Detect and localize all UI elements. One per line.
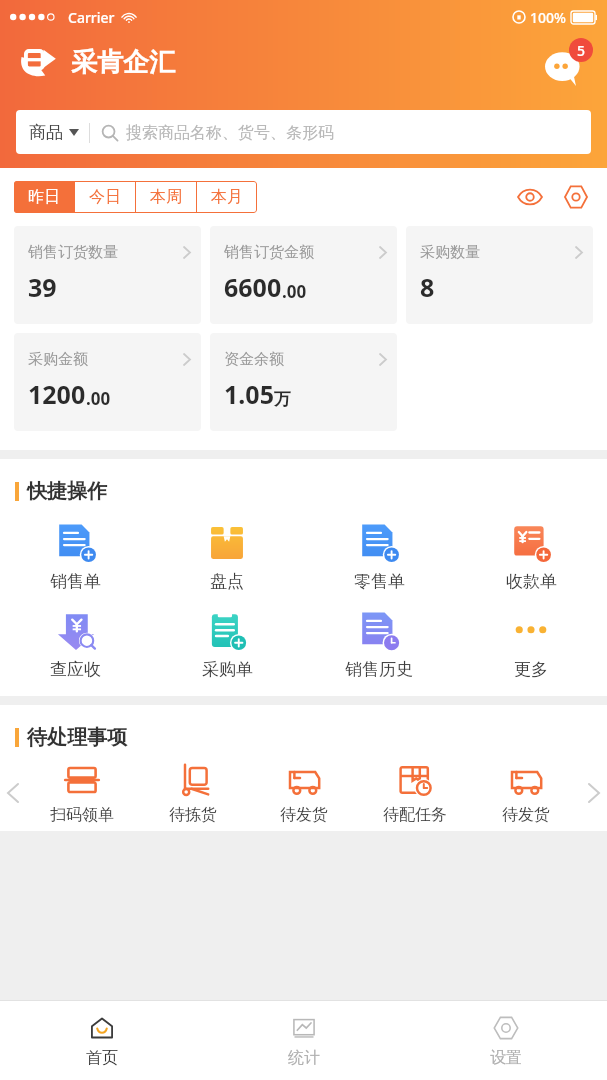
staticText: 采购金额	[28, 350, 88, 369]
staticText: 待发货	[280, 805, 328, 825]
button[interactable]: 本周	[136, 181, 196, 213]
staticText: 销售订货数量	[28, 243, 118, 262]
button[interactable]: 昨日	[14, 181, 74, 213]
staticText: 待处理事项	[27, 725, 127, 750]
staticText: 商品	[29, 122, 63, 143]
staticText: 资金余额	[224, 350, 284, 369]
staticText: 收款单	[506, 571, 557, 592]
staticText: 待配任务	[383, 805, 447, 825]
button[interactable]: Settings	[559, 180, 593, 214]
staticText: 今日	[89, 187, 121, 207]
button[interactable]: 资金余额	[210, 333, 397, 431]
button[interactable]: 今日	[75, 181, 135, 213]
staticText: 本周	[150, 187, 182, 207]
staticText: 1200	[28, 377, 86, 411]
staticText: 盘点	[210, 571, 244, 592]
staticText: 待发货	[502, 805, 550, 825]
staticText: 销售历史	[345, 659, 413, 680]
staticText: 更多	[514, 659, 548, 680]
staticText: 快捷操作	[27, 479, 107, 504]
button[interactable]: 销售历史	[303, 606, 455, 684]
button[interactable]: 查应收	[0, 606, 151, 684]
button[interactable]: 本月	[197, 181, 257, 213]
button[interactable]: 扫码领单	[26, 760, 137, 825]
staticText: 待拣货	[169, 805, 217, 825]
button[interactable]: 盘点	[151, 518, 303, 596]
staticText: Carrier	[68, 8, 115, 27]
staticText: 采购单	[202, 659, 253, 680]
button[interactable]: 销售订货金额	[210, 226, 397, 324]
staticText: 1.05	[224, 377, 274, 411]
staticText: 万	[274, 389, 291, 410]
staticText: 采肯企汇	[71, 46, 175, 79]
staticText: 8	[420, 270, 435, 304]
staticText: 查应收	[50, 659, 101, 680]
button[interactable]: Next	[581, 768, 607, 818]
staticText: 设置	[490, 1048, 522, 1068]
button[interactable]: 收款单	[455, 518, 607, 596]
button[interactable]: 设置	[405, 1001, 607, 1080]
staticText: 扫码领单	[50, 805, 114, 825]
button[interactable]: Previous	[0, 768, 26, 818]
button[interactable]: 待发货	[470, 760, 581, 825]
staticText: 首页	[86, 1048, 118, 1068]
button[interactable]: 销售订货数量	[14, 226, 201, 324]
staticText: 搜索商品名称、货号、条形码	[126, 123, 334, 143]
staticText: 采购数量	[420, 243, 480, 262]
staticText: 昨日	[28, 187, 60, 207]
staticText: 6600	[224, 270, 282, 304]
button[interactable]: 统计	[203, 1001, 405, 1080]
button[interactable]: 待拣货	[137, 760, 248, 825]
button[interactable]: 商品	[16, 110, 591, 154]
button[interactable]: 采购数量	[406, 226, 593, 324]
button[interactable]: Messages	[545, 38, 593, 86]
button[interactable]: 待配任务	[359, 760, 470, 825]
staticText: 39	[28, 270, 57, 304]
staticText: 本月	[211, 187, 243, 207]
staticText: .00	[282, 280, 307, 303]
button[interactable]: 待发货	[248, 760, 359, 825]
staticText: 统计	[288, 1048, 320, 1068]
staticText: 销售单	[50, 571, 101, 592]
button[interactable]: 零售单	[303, 518, 455, 596]
button[interactable]: 采购金额	[14, 333, 201, 431]
staticText: 销售订货金额	[224, 243, 314, 262]
button[interactable]: Show or hide amounts	[513, 180, 547, 214]
button[interactable]: 采购单	[151, 606, 303, 684]
staticText: 零售单	[354, 571, 405, 592]
button[interactable]: 更多	[455, 606, 607, 684]
staticText: .00	[86, 387, 111, 410]
button[interactable]: 销售单	[0, 518, 151, 596]
staticText: 100%	[530, 8, 566, 27]
button[interactable]: 首页	[0, 1001, 203, 1080]
staticText: 5	[577, 41, 586, 60]
